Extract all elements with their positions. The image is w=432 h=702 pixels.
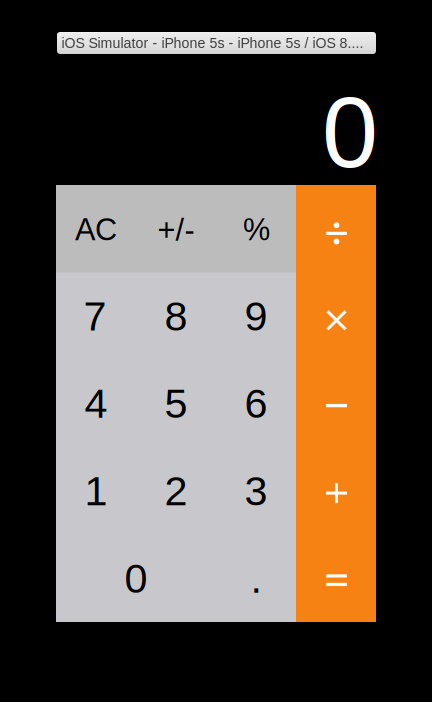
button[interactable]: Plus Minus — [136, 185, 216, 272]
button[interactable]: Add — [296, 447, 376, 535]
button[interactable]: 0 — [56, 535, 216, 622]
staticText: +/- — [157, 213, 194, 247]
staticText: 9 — [244, 293, 267, 339]
staticText: 1 — [84, 468, 107, 514]
staticText: 4 — [84, 380, 107, 427]
staticText: AC — [75, 212, 117, 247]
staticText: 8 — [164, 293, 187, 339]
button[interactable]: Divide — [296, 185, 376, 272]
button[interactable]: 4 — [56, 360, 136, 447]
button[interactable]: 2 — [136, 447, 216, 535]
button[interactable]: 6 — [216, 360, 296, 447]
staticText: 7 — [83, 293, 106, 339]
button[interactable]: Equals — [296, 535, 376, 622]
button[interactable]: Subtract — [296, 360, 376, 447]
staticText: 0 — [124, 555, 147, 601]
staticText: 3 — [244, 468, 267, 514]
button[interactable]: 3 — [216, 447, 296, 535]
button[interactable]: 7 — [56, 272, 136, 360]
button[interactable]: 5 — [136, 360, 216, 447]
staticText: 0 — [322, 76, 378, 188]
button[interactable]: Percent — [216, 185, 296, 272]
button[interactable]: 1 — [56, 447, 136, 535]
button[interactable]: Multiply — [296, 272, 376, 360]
staticText: % — [243, 212, 270, 247]
staticText: 5 — [164, 380, 187, 427]
staticText: iOS Simulator - iPhone 5s - iPhone 5s / … — [61, 35, 363, 51]
staticText: 2 — [164, 468, 187, 514]
staticText: 6 — [244, 380, 267, 427]
staticText: . — [250, 555, 261, 601]
button[interactable]: All Clear — [56, 185, 136, 272]
button[interactable]: Decimal point — [216, 535, 296, 622]
button[interactable]: 8 — [136, 272, 216, 360]
button[interactable]: 9 — [216, 272, 296, 360]
